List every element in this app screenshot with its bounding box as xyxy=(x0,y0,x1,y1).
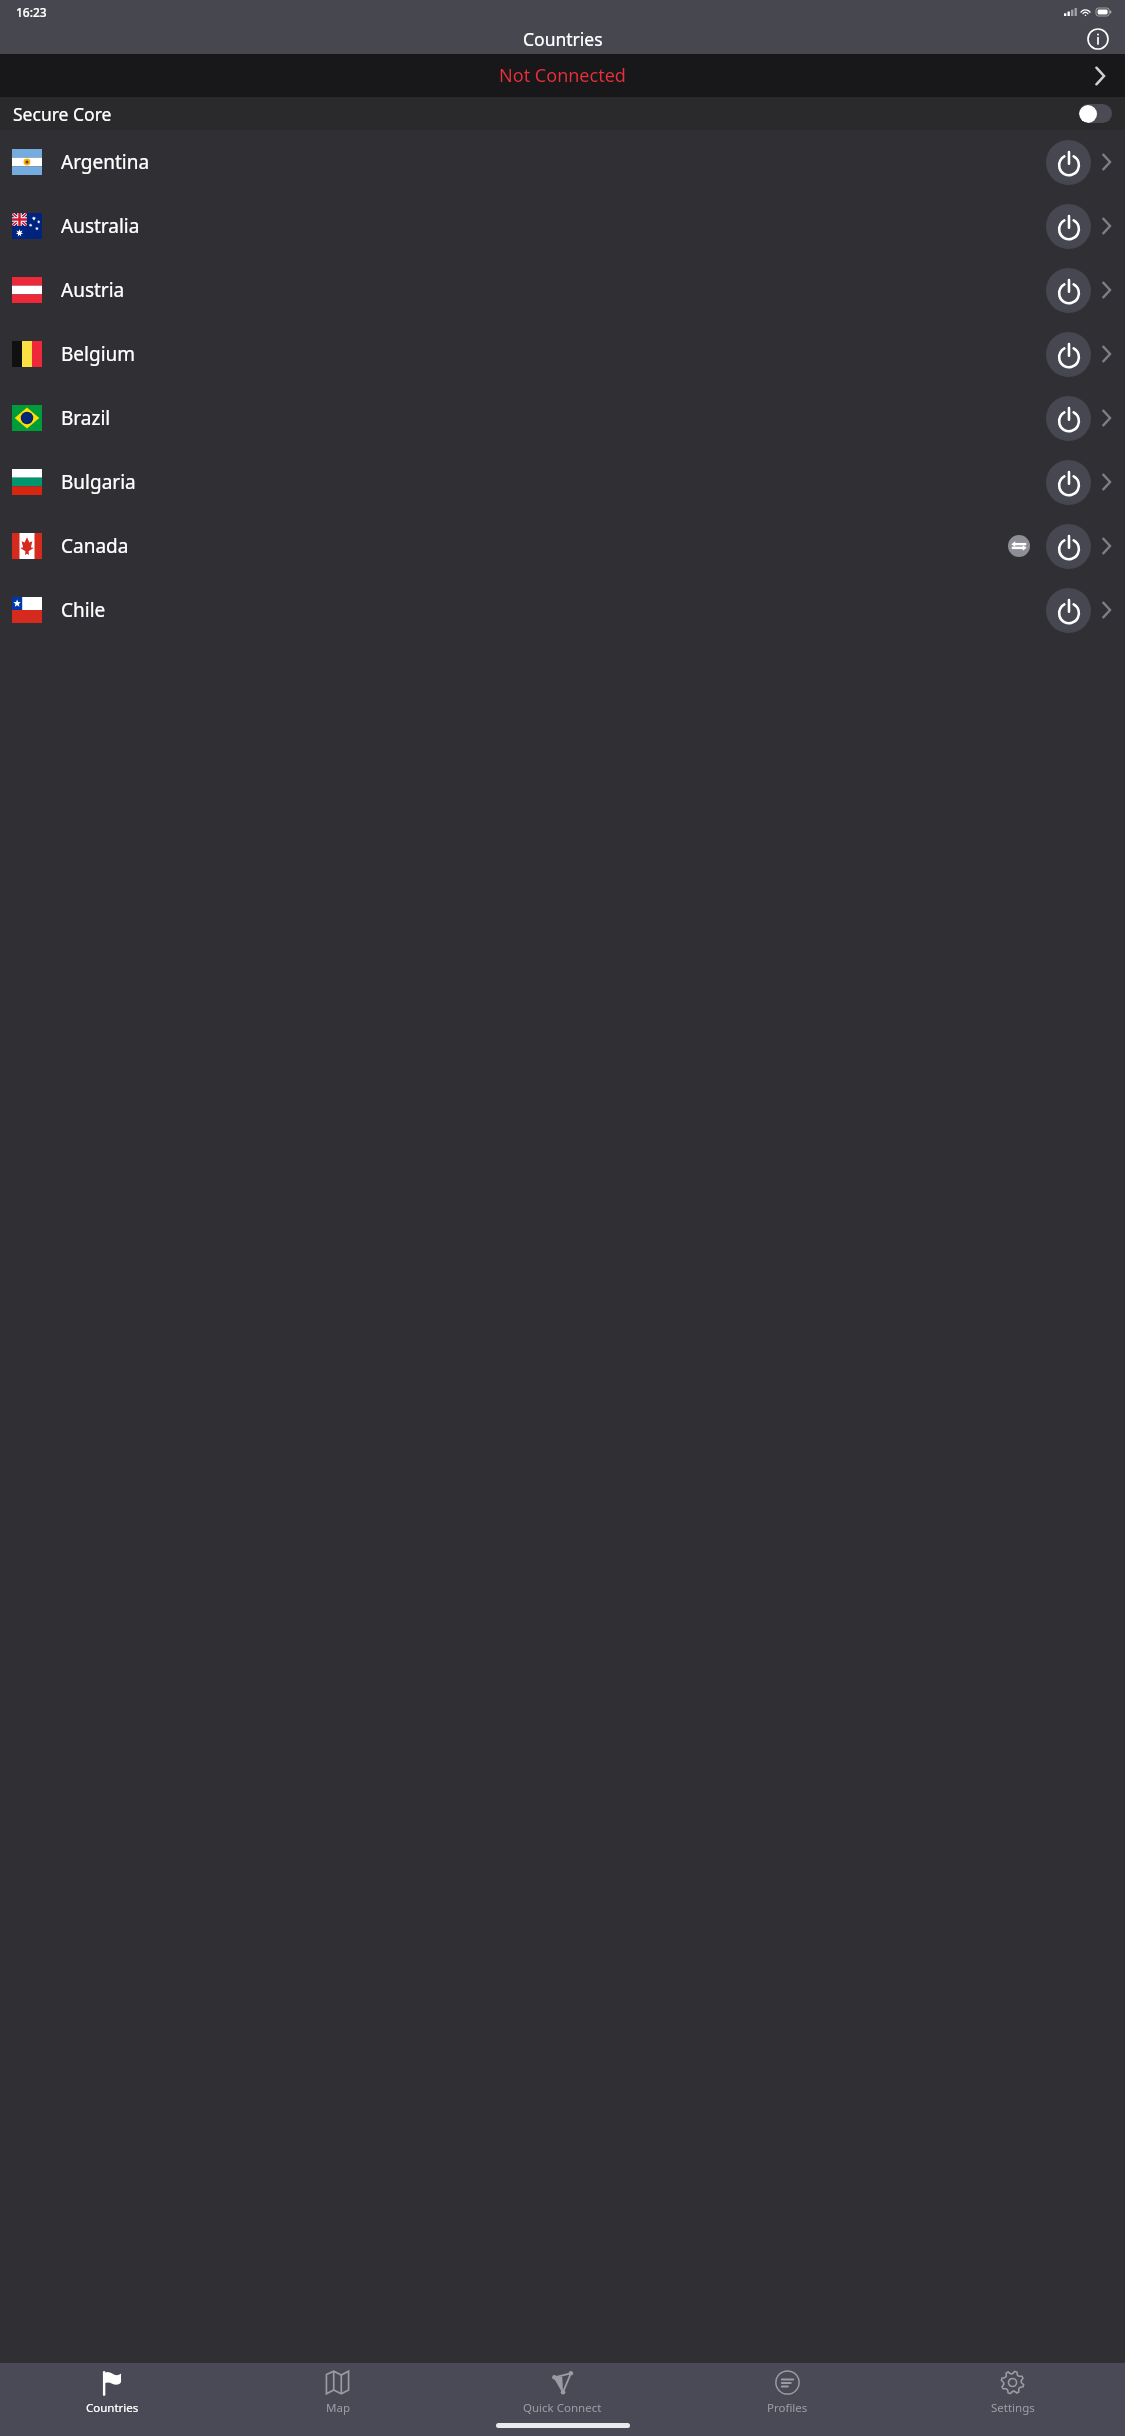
staticText: Belgium xyxy=(61,341,136,367)
button[interactable]: Connect to Brazil xyxy=(1046,396,1091,441)
button[interactable]: Connect to Canada xyxy=(1046,524,1091,569)
button[interactable]: Belgium xyxy=(0,322,1125,386)
staticText: Countries xyxy=(523,27,603,51)
button[interactable]: Connect to Argentina xyxy=(1046,140,1091,185)
staticText: Austria xyxy=(61,277,125,303)
staticText: Settings xyxy=(991,2400,1035,2416)
staticText: Australia xyxy=(61,213,140,239)
button[interactable]: Connect to Belgium xyxy=(1046,332,1091,377)
button[interactable]: Settings xyxy=(900,2363,1125,2421)
staticText: Quick Connect xyxy=(523,2400,602,2416)
button[interactable]: Bulgaria xyxy=(0,450,1125,514)
button[interactable]: Map xyxy=(225,2363,450,2421)
button[interactable]: Secure Core toggle xyxy=(1079,104,1112,123)
staticText: Secure Core xyxy=(13,102,112,126)
staticText: Bulgaria xyxy=(61,469,136,495)
button[interactable]: Brazil xyxy=(0,386,1125,450)
staticText: 16:23 xyxy=(16,4,47,20)
staticText: Canada xyxy=(61,533,129,559)
staticText: Argentina xyxy=(61,149,150,175)
button[interactable]: Canada xyxy=(0,514,1125,578)
staticText: Chile xyxy=(61,597,106,623)
other: P2P supported xyxy=(1008,535,1030,557)
staticText: Map xyxy=(326,2400,350,2416)
button[interactable]: Connect to Bulgaria xyxy=(1046,460,1091,505)
button[interactable]: Chile xyxy=(0,578,1125,642)
staticText: Not Connected xyxy=(499,63,626,88)
button[interactable]: Connect to Australia xyxy=(1046,204,1091,249)
button[interactable]: Secure Core xyxy=(0,97,1125,130)
button[interactable]: Profiles xyxy=(675,2363,900,2421)
button[interactable]: Australia xyxy=(0,194,1125,258)
staticText: Countries xyxy=(86,2400,139,2416)
button[interactable]: Countries xyxy=(0,2363,225,2421)
button[interactable]: Quick Connect xyxy=(450,2363,675,2421)
button[interactable]: Not Connected xyxy=(0,54,1125,97)
button[interactable]: Austria xyxy=(0,258,1125,322)
button[interactable]: Info xyxy=(1085,26,1111,52)
button[interactable]: Connect to Austria xyxy=(1046,268,1091,313)
button[interactable]: Connect to Chile xyxy=(1046,588,1091,633)
button[interactable]: Argentina xyxy=(0,130,1125,194)
staticText: Brazil xyxy=(61,405,111,431)
staticText: Profiles xyxy=(767,2400,808,2416)
